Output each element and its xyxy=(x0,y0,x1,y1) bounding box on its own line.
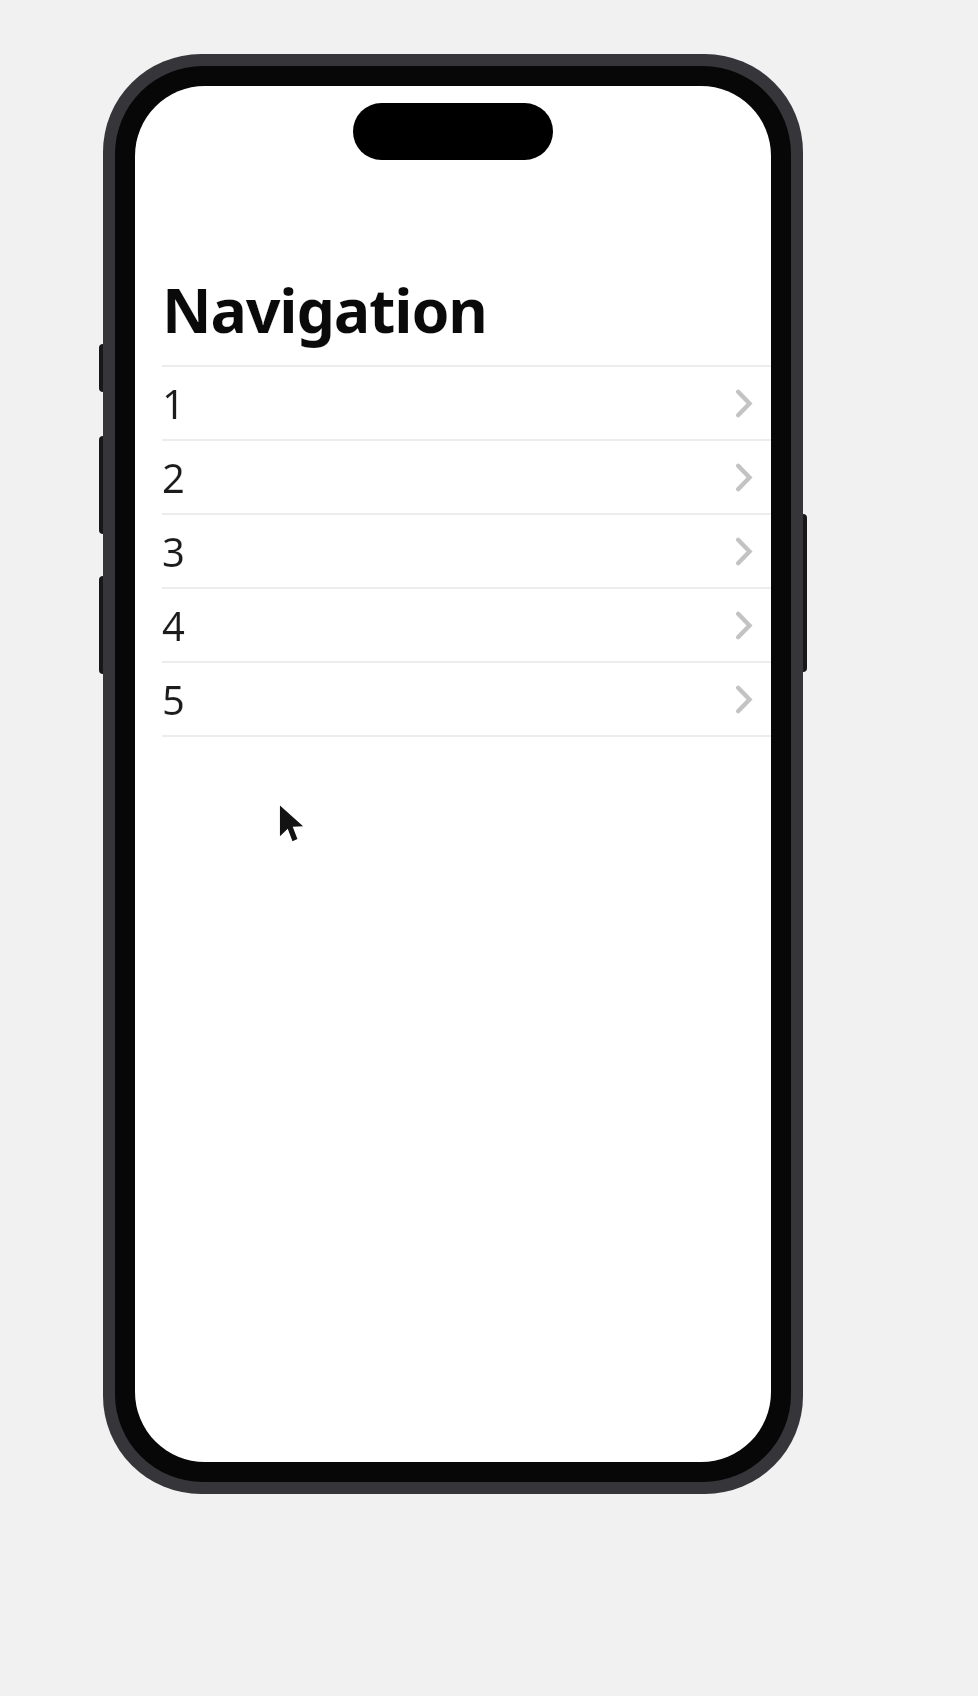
button[interactable]: 4 xyxy=(135,589,771,661)
button[interactable]: 5 xyxy=(135,663,771,735)
staticText: 5 xyxy=(162,672,185,726)
staticText: Navigation xyxy=(162,268,487,351)
button[interactable]: 1 xyxy=(135,367,771,439)
staticText: 1 xyxy=(162,376,185,430)
staticText: 2 xyxy=(162,450,185,504)
other: Open item 2 xyxy=(723,454,763,500)
staticText: 3 xyxy=(162,524,185,578)
other: Open item 3 xyxy=(723,528,763,574)
other: Open item 4 xyxy=(723,602,763,648)
other: Open item 1 xyxy=(723,380,763,426)
button[interactable]: 3 xyxy=(135,515,771,587)
button[interactable]: 2 xyxy=(135,441,771,513)
staticText: 4 xyxy=(162,598,185,652)
other: Open item 5 xyxy=(723,676,763,722)
